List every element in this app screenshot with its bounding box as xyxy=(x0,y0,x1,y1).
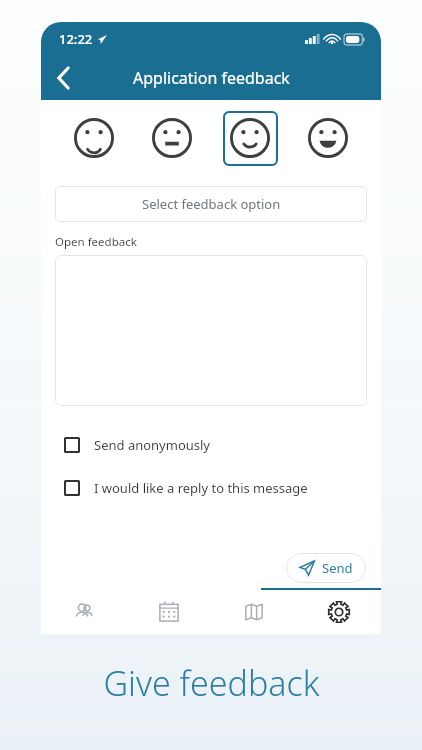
button[interactable]: Very dissatisfied xyxy=(55,107,133,169)
staticText: Select feedback option xyxy=(142,195,281,213)
staticText: I would like a reply to this message xyxy=(94,479,308,497)
staticText: Send xyxy=(322,559,353,577)
staticText: Send anonymously xyxy=(94,436,210,454)
button[interactable]: Select feedback option xyxy=(55,186,367,222)
button[interactable]: Settings xyxy=(296,590,381,634)
button[interactable]: Contacts xyxy=(41,590,126,634)
button[interactable]: Back xyxy=(41,56,85,100)
staticText: 12:22 xyxy=(59,30,93,48)
button[interactable]: Open feedback text field xyxy=(55,255,367,406)
button[interactable]: Very satisfied xyxy=(289,107,367,169)
button[interactable]: I would like a reply to this message xyxy=(55,475,367,501)
button[interactable]: Satisfied xyxy=(211,107,289,169)
button[interactable]: Send xyxy=(286,553,366,583)
button[interactable]: Neutral xyxy=(133,107,211,169)
button[interactable]: Calendar xyxy=(126,590,211,634)
staticText: Open feedback xyxy=(55,234,137,250)
button[interactable]: Map xyxy=(211,590,296,634)
button[interactable]: Send anonymously xyxy=(55,432,367,458)
staticText: Give feedback xyxy=(103,660,320,706)
staticText: Application feedback xyxy=(133,67,290,89)
